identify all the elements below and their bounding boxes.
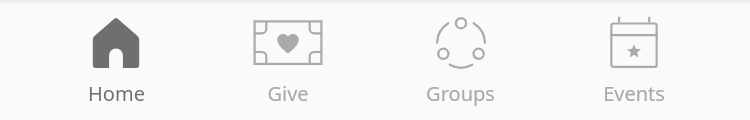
staticText: Give <box>267 80 309 107</box>
button[interactable]: Give <box>202 0 374 120</box>
button[interactable]: Home <box>30 0 202 120</box>
button[interactable]: Events <box>547 0 720 120</box>
other: Give <box>248 12 328 70</box>
other: Groups <box>421 12 501 70</box>
staticText: Events <box>603 80 665 107</box>
other: Home <box>76 12 156 70</box>
staticText: Groups <box>426 80 495 107</box>
other: Events <box>594 12 674 70</box>
button[interactable]: Groups <box>374 0 547 120</box>
staticText: Home <box>88 80 145 107</box>
